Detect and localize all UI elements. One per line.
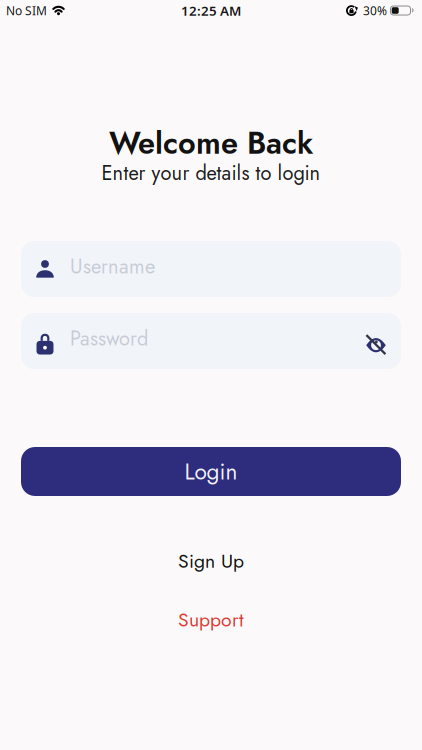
staticText: Username [70,252,155,281]
staticText: Sign Up [178,547,244,575]
button[interactable]: Support [178,606,244,634]
staticText: Login [184,455,237,488]
staticText: 12:25 AM [181,2,241,19]
button[interactable]: Sign Up [178,547,244,575]
staticText: 30% [363,2,387,18]
button[interactable]: Login [21,447,401,496]
staticText: Support [178,606,244,634]
button[interactable]: Show password [369,333,389,348]
staticText: No SIM [6,2,47,18]
staticText: Password [70,324,148,353]
staticText: Welcome Back [109,121,313,165]
staticText: Enter your details to login [101,158,320,187]
